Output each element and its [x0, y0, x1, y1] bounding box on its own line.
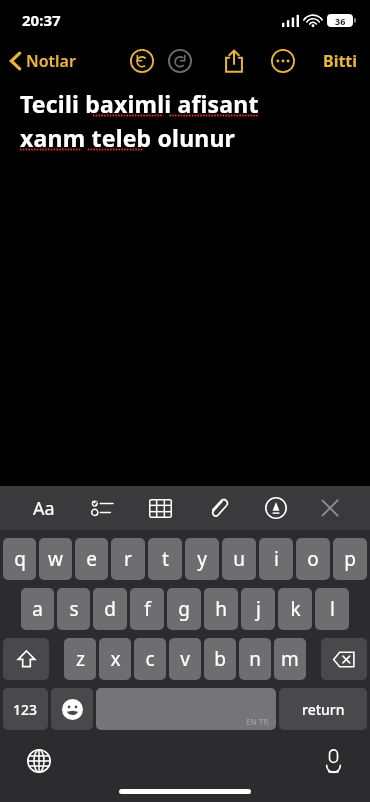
button[interactable]: r [111, 538, 145, 580]
staticText: h [215, 596, 227, 622]
staticText: x [110, 646, 121, 672]
button[interactable]: Share [217, 44, 251, 78]
staticText: y [197, 546, 207, 572]
button[interactable]: Shift [3, 638, 49, 680]
button[interactable]: Switch keyboard language [18, 740, 60, 782]
button[interactable]: k [278, 588, 312, 630]
staticText: Aa [33, 496, 55, 521]
button[interactable]: n [239, 638, 271, 680]
staticText: Tecili baximli afisant [20, 88, 259, 119]
staticText: u [233, 546, 245, 572]
button[interactable]: t [148, 538, 182, 580]
button[interactable]: q [3, 538, 36, 580]
staticText: c [145, 646, 155, 672]
button[interactable]: Dictation [312, 740, 354, 782]
staticText: m [281, 646, 299, 672]
staticText: a [32, 596, 43, 622]
staticText: return [302, 700, 345, 719]
button[interactable]: w [39, 538, 72, 580]
staticText: 36 [335, 15, 346, 27]
staticText: r [124, 546, 132, 572]
button[interactable]: o [296, 538, 330, 580]
staticText: Notlar [26, 50, 76, 72]
staticText: Bitti [323, 50, 358, 72]
button[interactable]: Emoji [51, 688, 93, 730]
staticText: EN TR [246, 716, 269, 727]
button[interactable]: x [99, 638, 131, 680]
staticText: n [249, 646, 261, 672]
button[interactable]: h [204, 588, 238, 630]
staticText: b [214, 646, 226, 672]
button[interactable]: p [333, 538, 367, 580]
button[interactable]: d [93, 588, 127, 630]
staticText: 123 [13, 700, 38, 719]
button[interactable]: 123 [3, 688, 48, 730]
button[interactable]: Redo [163, 44, 197, 78]
button[interactable]: Text formatting [24, 488, 64, 528]
button[interactable]: z [64, 638, 96, 680]
button[interactable]: Space [96, 688, 276, 730]
button[interactable]: u [222, 538, 256, 580]
button[interactable]: Bitti [311, 44, 370, 78]
staticText: s [69, 596, 79, 622]
button[interactable]: Backspace [321, 638, 367, 680]
staticText: p [344, 546, 356, 572]
button[interactable]: return [279, 688, 367, 730]
button[interactable]: y [185, 538, 219, 580]
staticText: v [180, 646, 190, 672]
staticText: i [274, 546, 279, 572]
button[interactable]: s [57, 588, 90, 630]
button[interactable]: Markup [256, 488, 296, 528]
button[interactable]: Attach file [198, 488, 238, 528]
button[interactable]: Checklist [82, 488, 122, 528]
button[interactable]: Close keyboard [310, 488, 350, 528]
staticText: e [86, 546, 97, 572]
staticText: 20:37 [22, 10, 61, 30]
button[interactable]: i [259, 538, 293, 580]
staticText: o [307, 546, 319, 572]
staticText: t [162, 546, 169, 572]
button[interactable]: Undo [125, 44, 159, 78]
button[interactable]: g [167, 588, 201, 630]
button[interactable]: More options [266, 44, 300, 78]
staticText: g [178, 596, 190, 622]
staticText: j [256, 596, 261, 622]
button[interactable]: Notlar [0, 46, 84, 76]
button[interactable]: e [75, 538, 108, 580]
staticText: k [290, 596, 301, 622]
button[interactable]: c [134, 638, 166, 680]
staticText: z [76, 646, 85, 672]
button[interactable]: a [21, 588, 54, 630]
button[interactable]: f [130, 588, 164, 630]
button[interactable]: v [169, 638, 201, 680]
button[interactable]: Table [140, 488, 180, 528]
staticText: q [14, 546, 26, 572]
button[interactable]: j [241, 588, 275, 630]
staticText: xanm teleb olunur [20, 122, 235, 153]
button[interactable]: b [204, 638, 236, 680]
staticText: d [104, 596, 116, 622]
staticText: l [330, 596, 335, 622]
staticText: w [48, 546, 63, 572]
staticText: f [144, 596, 151, 622]
button[interactable]: l [315, 588, 349, 630]
button[interactable]: m [274, 638, 306, 680]
